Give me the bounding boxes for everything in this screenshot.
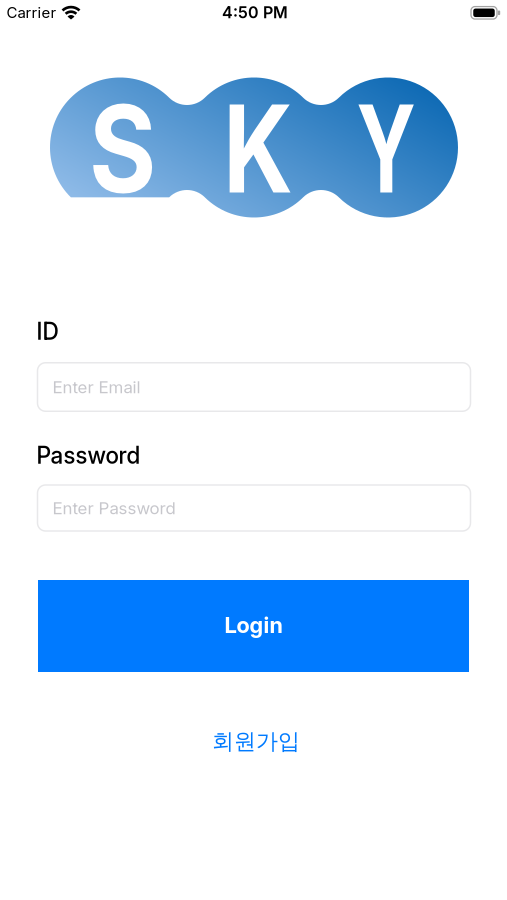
- button[interactable]: Login: [38, 580, 469, 672]
- staticText: Password: [36, 442, 140, 469]
- staticText: Y: [342, 77, 430, 220]
- staticText: ID: [36, 318, 58, 345]
- staticText: Enter Password: [52, 498, 175, 518]
- staticText: Carrier: [6, 4, 56, 21]
- staticText: Login: [224, 612, 282, 638]
- staticText: Enter Email: [52, 377, 140, 397]
- staticText: 4:50 PM: [222, 3, 288, 22]
- staticText: S: [83, 77, 162, 220]
- staticText: 회원가입: [212, 728, 300, 755]
- staticText: K: [214, 77, 301, 220]
- button[interactable]: 회원가입: [212, 728, 300, 755]
